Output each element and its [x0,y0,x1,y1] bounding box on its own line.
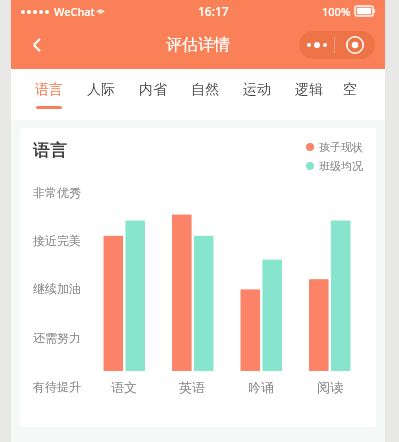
staticText: 有待提升 [33,379,81,394]
staticText: 语文 [111,379,137,395]
staticText: WeChat [54,4,95,19]
staticText: 人际 [87,81,115,99]
staticText: 班级均况 [319,159,363,173]
staticText: 吟诵 [248,379,274,395]
staticText: 评估详情 [166,35,230,55]
staticText: 16:17 [198,3,229,19]
button[interactable]: 自然 [179,69,231,120]
staticText: 英语 [179,379,205,395]
staticText: 非常优秀 [33,185,81,200]
staticText: 自然 [191,81,219,99]
button[interactable]: 逻辑 [283,69,335,120]
staticText: 100% [322,4,351,19]
staticText: 逻辑 [295,81,323,99]
staticText: 继续加油 [33,281,81,296]
button[interactable]: 内省 [127,69,179,120]
staticText: 阅读 [317,379,343,395]
staticText: 运动 [243,81,271,99]
staticText: 语言 [35,81,63,99]
staticText: 空 [343,81,357,99]
staticText: 接近完美 [33,233,81,248]
staticText: 孩子现状 [319,140,363,154]
button[interactable]: 空 [335,69,365,120]
button[interactable]: 语言 [23,69,75,120]
staticText: 语言 [33,140,67,161]
button[interactable]: 人际 [75,69,127,120]
button[interactable]: Back [19,27,55,63]
staticText: 还需努力 [33,330,81,345]
staticText: 内省 [139,81,167,99]
button[interactable]: Menu and close [299,31,375,59]
button[interactable]: 运动 [231,69,283,120]
